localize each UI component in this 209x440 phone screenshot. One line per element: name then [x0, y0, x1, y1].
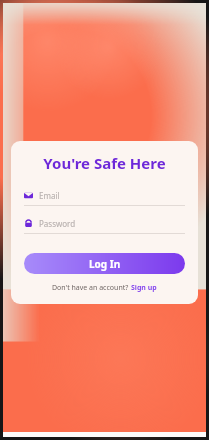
button[interactable]: Log In	[24, 253, 185, 274]
button[interactable]: Email	[24, 190, 185, 206]
staticText: Email	[39, 190, 60, 201]
staticText: You're Safe Here	[24, 153, 185, 173]
button[interactable]: Sign up	[131, 283, 157, 293]
staticText: Sign up	[131, 283, 157, 293]
staticText: Password	[39, 218, 76, 229]
button[interactable]: Password	[24, 218, 185, 234]
staticText: Log In	[89, 257, 121, 271]
staticText: Don't have an account?	[52, 283, 131, 293]
